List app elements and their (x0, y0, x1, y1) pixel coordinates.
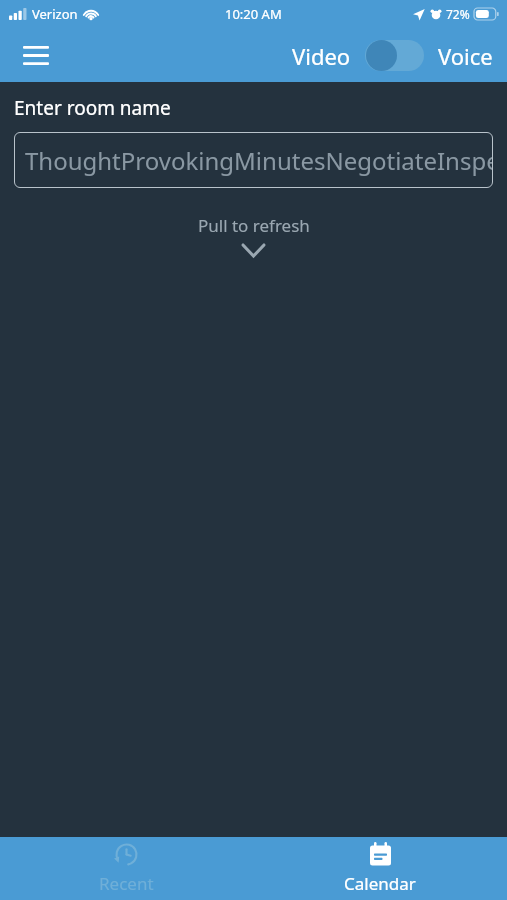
button[interactable]: Calendar (253, 837, 507, 900)
button[interactable]: Recent (0, 837, 253, 900)
staticText: 72% (446, 6, 470, 22)
staticText: 10:20 AM (225, 5, 282, 23)
button[interactable]: Voice (438, 41, 493, 71)
staticText: ThoughtProvokingMinutesNegotiateInspecto… (25, 144, 493, 177)
staticText: Pull to refresh (198, 214, 310, 237)
staticText: Calendar (344, 872, 416, 895)
staticText: Enter room name (14, 95, 171, 121)
button[interactable]: Video (292, 41, 351, 71)
staticText: Recent (99, 872, 154, 895)
button[interactable]: Toggle between Video and Voice (365, 39, 424, 72)
button[interactable]: Open navigation menu (12, 31, 60, 79)
button[interactable]: ThoughtProvokingMinutesNegotiateInspecto… (14, 132, 493, 188)
staticText: Verizon (32, 5, 78, 23)
